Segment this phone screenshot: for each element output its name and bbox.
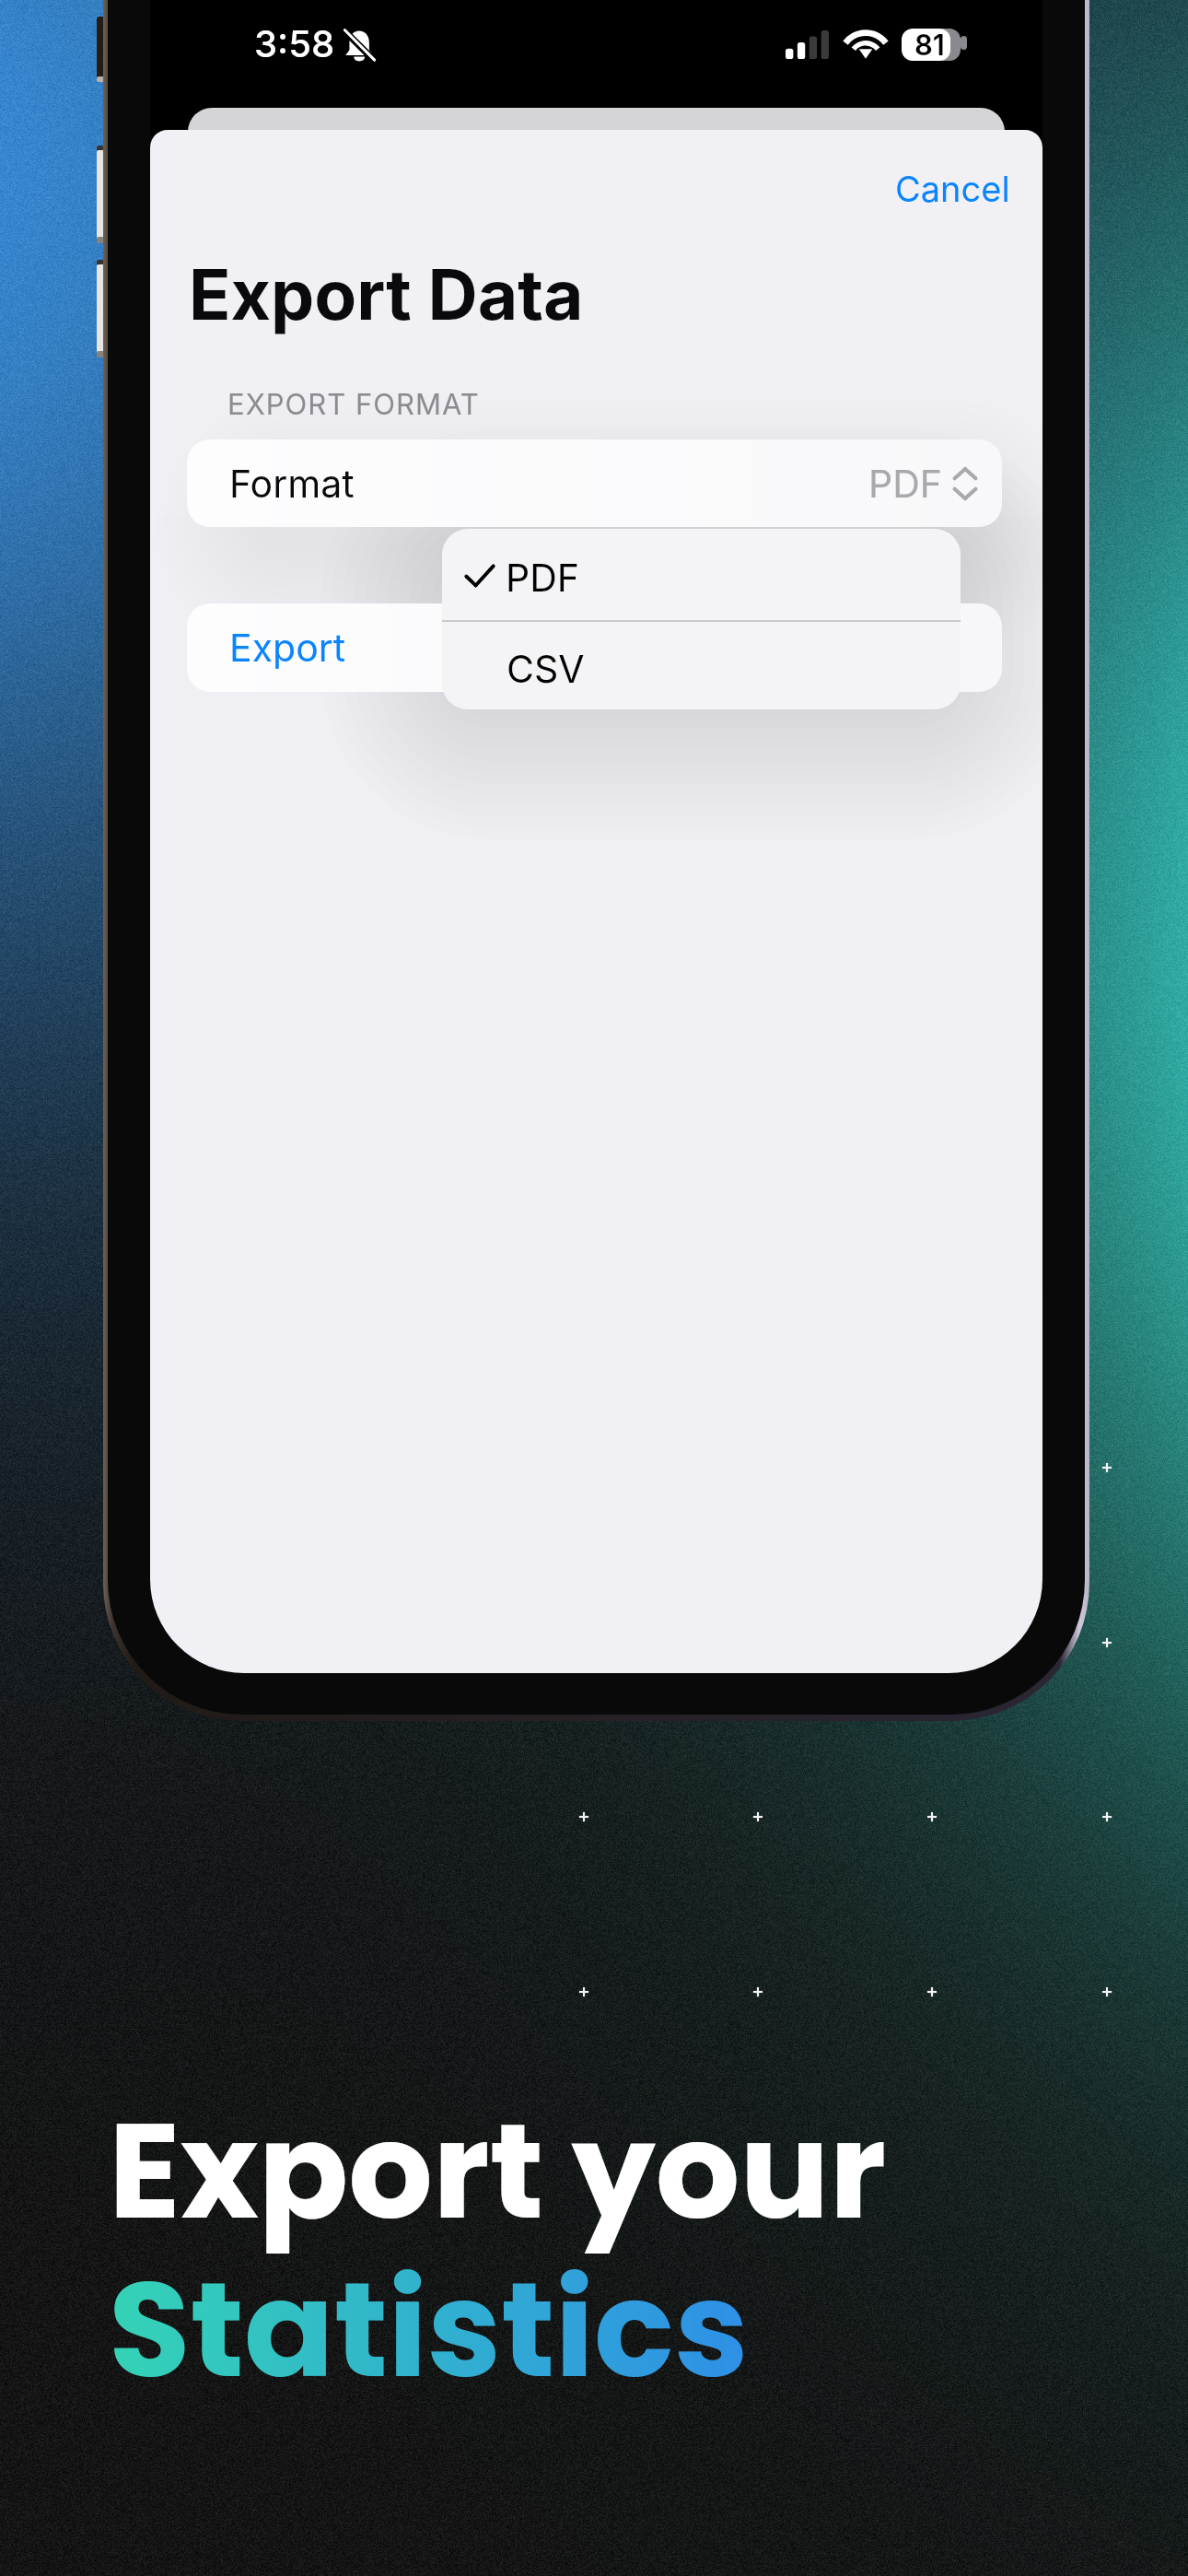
staticText: Export your [109, 2078, 887, 2265]
other: Wi-Fi [845, 29, 886, 59]
staticText: 3:58 [254, 21, 335, 65]
button[interactable]: PDF [442, 529, 961, 620]
staticText: Export Data [189, 252, 584, 336]
button[interactable]: CSV [442, 622, 961, 709]
staticText: CSV [507, 646, 585, 692]
staticText: Format [229, 461, 355, 507]
staticText: PDF [868, 461, 942, 507]
staticText: EXPORT FORMAT [227, 387, 480, 422]
other: Cellular signal [786, 30, 829, 59]
staticText: Export [229, 625, 346, 671]
staticText: PDF [506, 555, 579, 601]
button[interactable]: Export [187, 603, 1002, 692]
staticText: Cancel [895, 168, 1010, 210]
staticText: Statistics [109, 2237, 749, 2423]
button[interactable]: Format [187, 439, 1002, 527]
button[interactable]: Cancel [887, 160, 1019, 217]
other: Silent mode [344, 29, 374, 63]
staticText: 81 [914, 29, 945, 60]
